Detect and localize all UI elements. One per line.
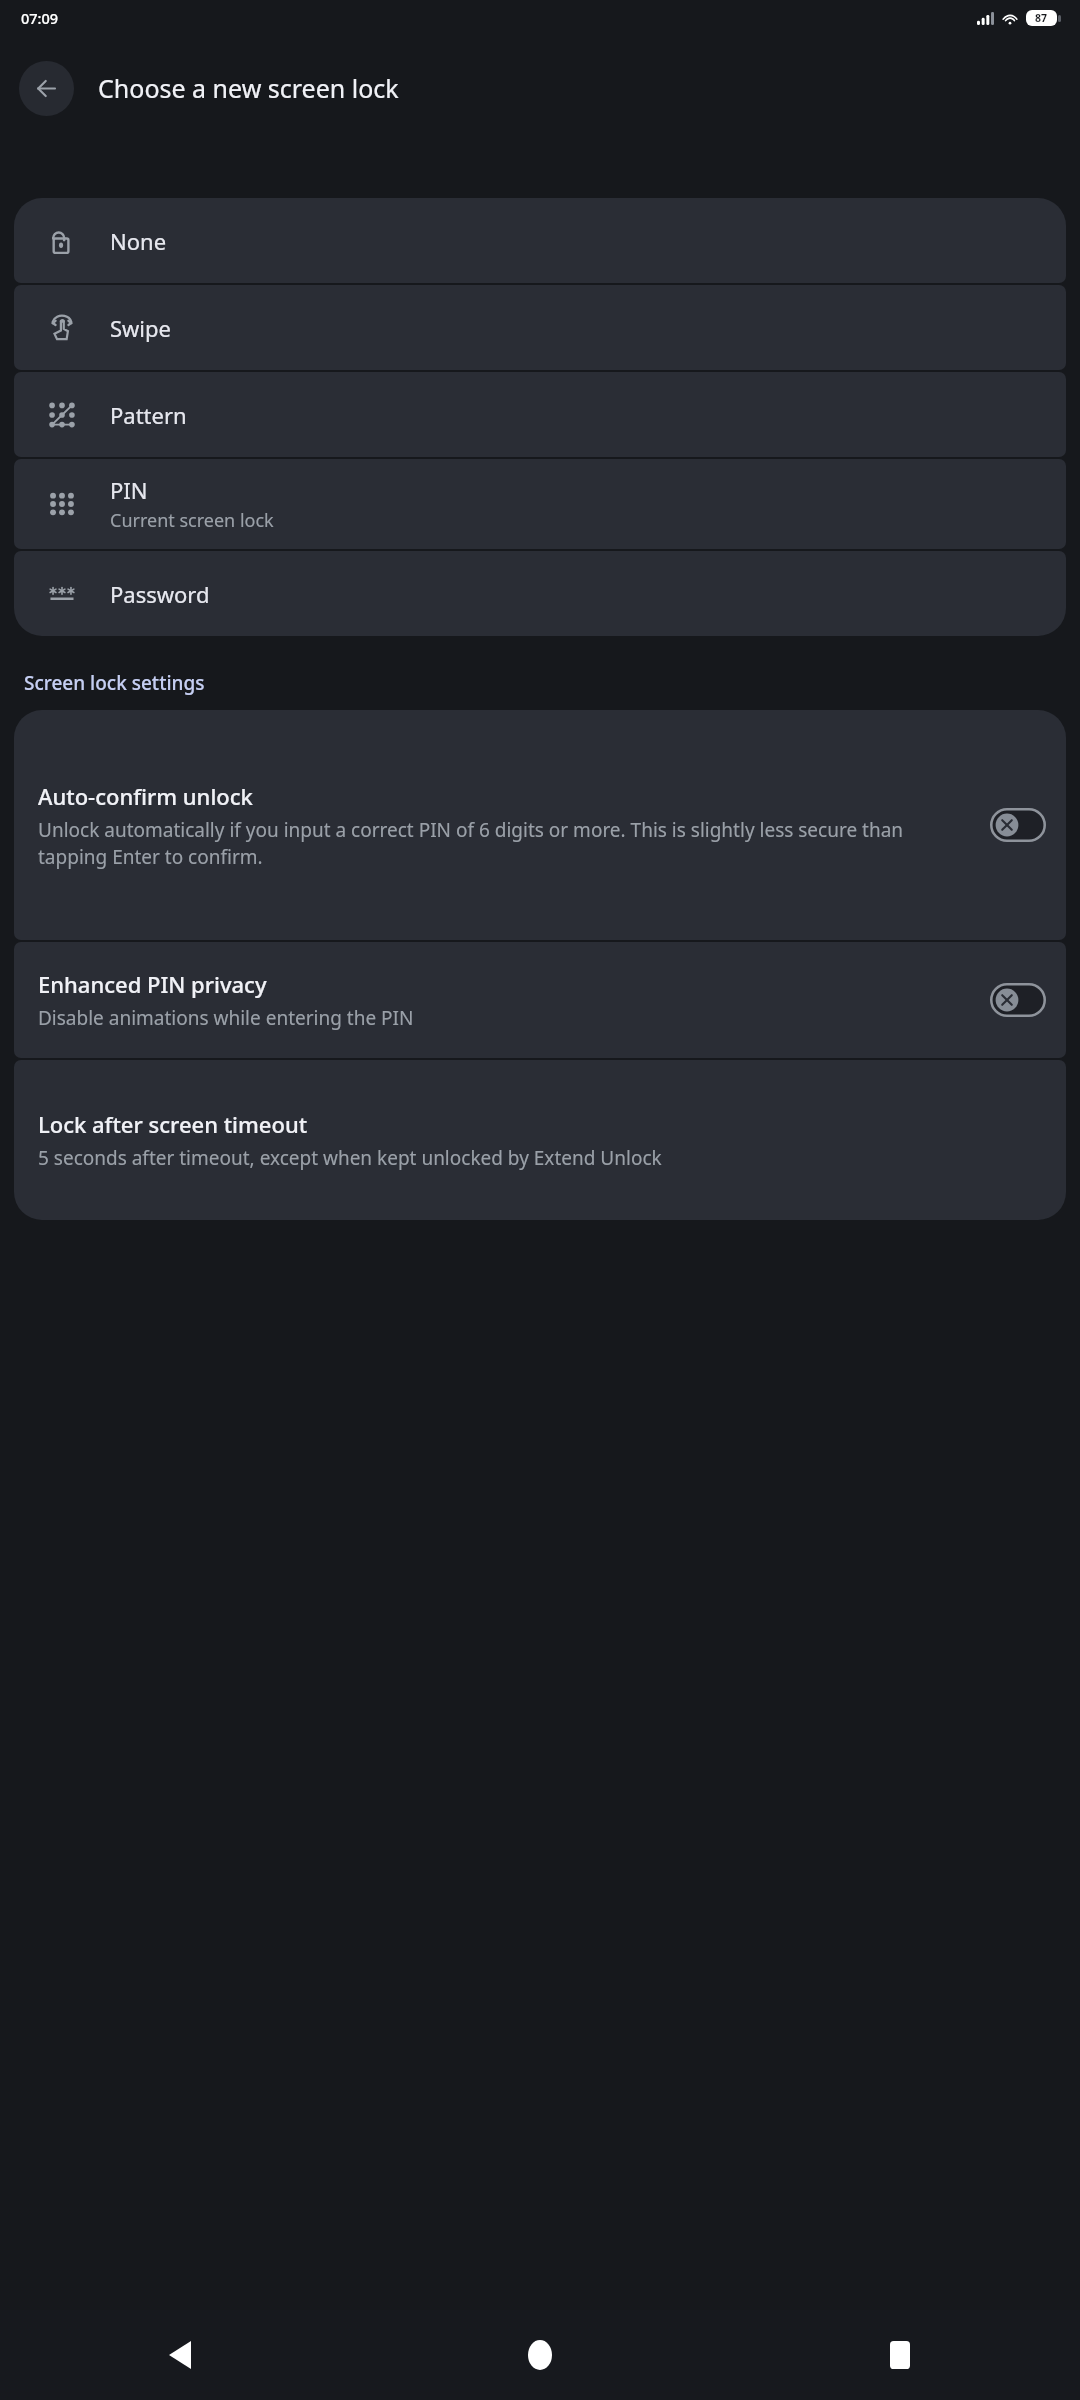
- staticText: 87: [1035, 11, 1048, 25]
- staticText: Auto-confirm unlock: [38, 781, 253, 811]
- button[interactable]: Enhanced PIN privacy: [14, 942, 1066, 1058]
- staticText: Disable animations while entering the PI…: [38, 1005, 414, 1031]
- button[interactable]: Pattern: [14, 372, 1066, 457]
- staticText: Screen lock settings: [24, 670, 205, 696]
- button[interactable]: Back: [19, 61, 74, 116]
- button[interactable]: PIN: [14, 459, 1066, 549]
- staticText: Pattern: [110, 400, 187, 430]
- staticText: 07:09: [21, 8, 59, 28]
- staticText: Lock after screen timeout: [38, 1109, 308, 1139]
- staticText: Password: [110, 579, 210, 609]
- button[interactable]: Swipe: [14, 285, 1066, 370]
- staticText: Swipe: [110, 313, 171, 343]
- staticText: Choose a new screen lock: [98, 71, 399, 105]
- button[interactable]: Toggle off: [990, 983, 1046, 1017]
- button[interactable]: Home: [360, 2310, 720, 2400]
- staticText: Enhanced PIN privacy: [38, 969, 267, 999]
- button[interactable]: Password: [14, 551, 1066, 636]
- button[interactable]: Auto-confirm unlock: [14, 710, 1066, 940]
- staticText: 5 seconds after timeout, except when kep…: [38, 1145, 662, 1171]
- staticText: Unlock automatically if you input a corr…: [38, 817, 974, 870]
- button[interactable]: Recent apps: [720, 2310, 1080, 2400]
- button[interactable]: Back: [0, 2310, 360, 2400]
- button[interactable]: Toggle off: [990, 808, 1046, 842]
- staticText: Current screen lock: [110, 508, 274, 533]
- staticText: None: [110, 226, 167, 256]
- button[interactable]: None: [14, 198, 1066, 283]
- button[interactable]: Lock after screen timeout: [14, 1060, 1066, 1220]
- staticText: PIN: [110, 475, 148, 505]
